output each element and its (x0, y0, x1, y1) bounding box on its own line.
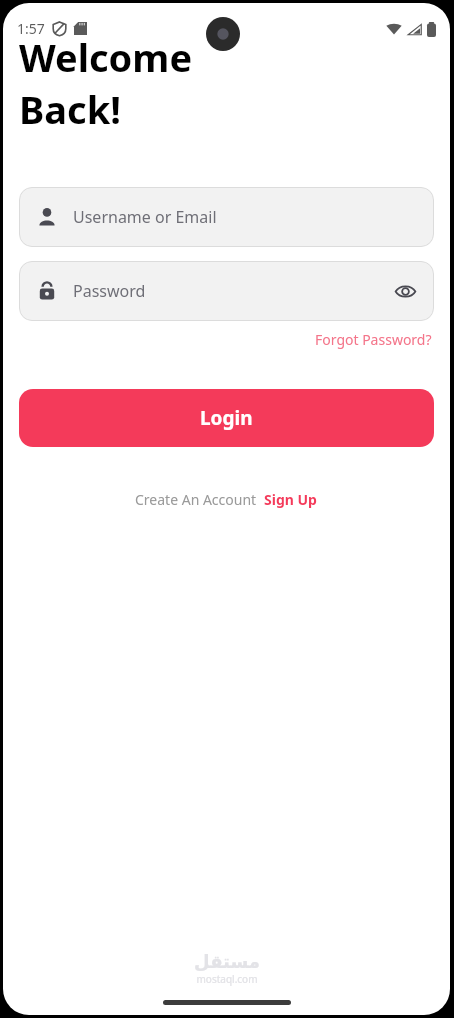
staticText: Password (73, 280, 146, 302)
staticText: 1:57 (17, 19, 45, 38)
button[interactable]: Password (19, 261, 434, 321)
staticText: Login (200, 405, 253, 431)
staticText: Create An Account (135, 490, 257, 509)
button[interactable]: Show password (393, 279, 418, 304)
button[interactable]: Forgot Password? (313, 328, 434, 351)
staticText: Welcome (19, 31, 193, 83)
staticText: Username or Email (73, 206, 217, 228)
button[interactable]: Login (19, 389, 434, 447)
staticText: Forgot Password? (315, 330, 432, 349)
button[interactable]: Username or Email (19, 187, 434, 247)
button[interactable]: Sign Up (263, 489, 318, 510)
staticText: مستقل (194, 951, 260, 972)
staticText: Sign Up (264, 490, 317, 509)
staticText: Back! (19, 83, 121, 135)
staticText: mostaql.com (196, 972, 258, 986)
